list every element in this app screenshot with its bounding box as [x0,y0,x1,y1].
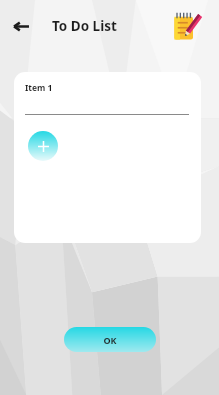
button[interactable]: Back [7,12,36,41]
button[interactable]: Edit notes [171,11,203,43]
button[interactable]: Item 1 [14,72,201,243]
staticText: OK [103,334,117,346]
button[interactable]: OK [64,327,156,352]
staticText: To Do List [52,17,117,35]
button[interactable]: Add item [28,131,58,161]
staticText: Item 1 [25,82,53,94]
